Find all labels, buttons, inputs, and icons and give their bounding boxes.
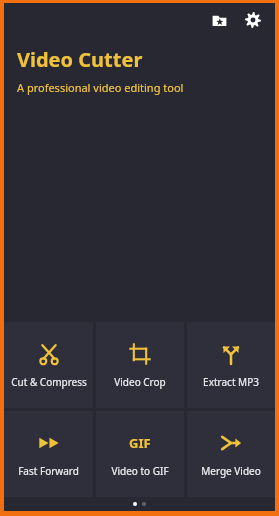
staticText: A professional video editing tool [17, 80, 184, 95]
staticText: Cut & Compress [11, 375, 87, 389]
button[interactable]: Cut & Compress [4, 322, 93, 408]
button[interactable]: Fast Forward [4, 411, 93, 497]
button[interactable]: GIF [96, 411, 184, 497]
button[interactable]: Merge Video [187, 411, 275, 497]
button[interactable]: Video Crop [96, 322, 184, 408]
button[interactable]: Saved videos folder [204, 5, 234, 35]
staticText: GIF [129, 434, 151, 452]
button[interactable]: Extract MP3 [187, 322, 275, 408]
staticText: Video to GIF [111, 464, 169, 478]
staticText: Fast Forward [18, 464, 79, 478]
staticText: Video Crop [114, 375, 166, 389]
staticText: Video Cutter [17, 46, 143, 73]
button[interactable]: Settings [238, 5, 268, 35]
staticText: Extract MP3 [203, 375, 259, 389]
staticText: Merge Video [201, 464, 261, 478]
